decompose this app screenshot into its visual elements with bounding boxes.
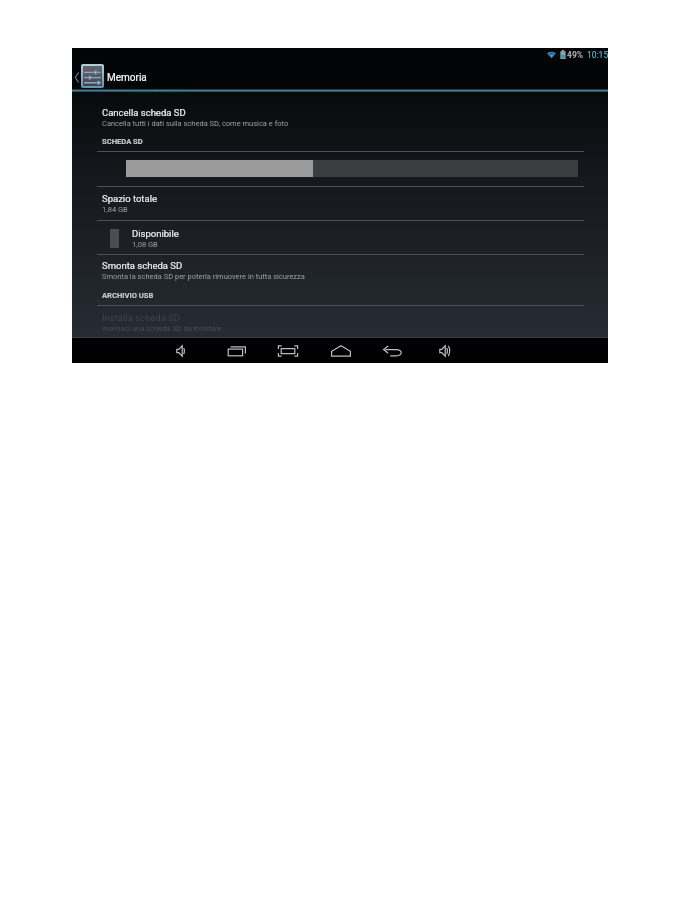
staticText: SCHEDA SD bbox=[102, 137, 143, 146]
staticText: 49% bbox=[567, 50, 584, 59]
button[interactable]: Volume up bbox=[432, 338, 458, 363]
staticText: 1,84 GB bbox=[102, 205, 128, 214]
staticText: 1,08 GB bbox=[132, 240, 158, 249]
staticText: Memoria bbox=[107, 72, 147, 84]
button[interactable]: Cancella scheda SD bbox=[97, 100, 584, 126]
button[interactable]: Volume down bbox=[169, 338, 195, 363]
button[interactable]: Spazio totale bbox=[97, 186, 584, 219]
button[interactable]: Home bbox=[328, 338, 354, 363]
button[interactable]: Smonta scheda SD bbox=[97, 253, 584, 286]
staticText: Disponibile bbox=[132, 228, 179, 239]
staticText: Spazio totale bbox=[129, 84, 184, 95]
staticText: Smonta scheda SD bbox=[102, 260, 183, 271]
button[interactable]: Back bbox=[380, 338, 406, 363]
staticText: 10:15 bbox=[587, 50, 609, 59]
staticText: Inserisci una scheda SD da montare bbox=[102, 324, 222, 333]
staticText: Smonta la scheda SD per poterla rimuover… bbox=[102, 272, 305, 281]
staticText: Installa scheda SD bbox=[102, 312, 181, 323]
staticText: ARCHIVIO USB bbox=[102, 291, 154, 300]
button[interactable]: Recents bbox=[224, 338, 250, 363]
staticText: Cancella tutti i dati sulla scheda SD, c… bbox=[102, 119, 289, 128]
button[interactable]: Screenshot bbox=[275, 338, 301, 363]
button[interactable]: Disponibile bbox=[97, 221, 584, 254]
staticText: Spazio totale bbox=[102, 193, 157, 204]
button[interactable]: Settings bbox=[83, 66, 102, 86]
staticText: Cancella scheda SD bbox=[102, 107, 186, 118]
button[interactable]: Back bbox=[72, 65, 81, 90]
